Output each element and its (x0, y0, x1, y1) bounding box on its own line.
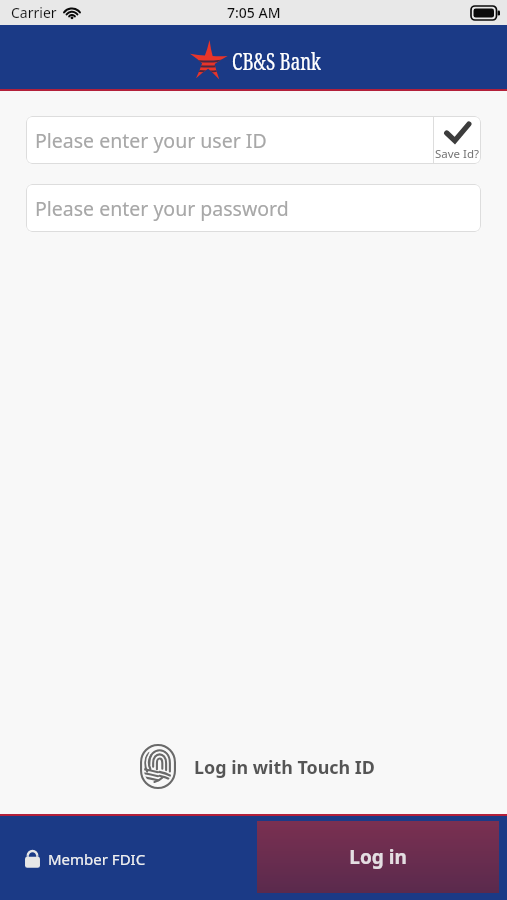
staticText: Carrier (11, 3, 57, 22)
button[interactable]: Save Id (434, 116, 481, 164)
button[interactable]: Log in (257, 821, 499, 893)
staticText: Log in with Touch ID (194, 755, 375, 779)
staticText: Please enter your user ID (35, 127, 267, 154)
button[interactable]: Log in with Touch ID (140, 744, 375, 789)
staticText: Please enter your password (35, 195, 289, 222)
staticText: Log in (349, 844, 407, 870)
staticText: Save Id? (435, 146, 480, 161)
staticText: Member FDIC (48, 849, 146, 869)
button[interactable]: Member FDIC (24, 848, 146, 869)
button[interactable]: Please enter your user ID (26, 116, 433, 164)
button[interactable]: Please enter your password (26, 184, 481, 232)
staticText: 7:05 AM (227, 3, 281, 22)
staticText: CB&S Bank (232, 45, 322, 76)
